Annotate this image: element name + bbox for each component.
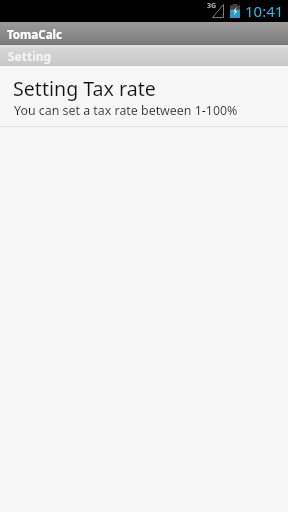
button[interactable]: Setting Tax rate xyxy=(0,69,288,126)
staticText: Setting xyxy=(8,48,52,64)
staticText: 10:41 xyxy=(245,1,284,21)
button[interactable]: TomaCalc xyxy=(0,22,288,45)
other: Battery charging xyxy=(230,4,240,18)
staticText: You can set a tax rate between 1-100% xyxy=(14,102,238,119)
staticText: TomaCalc xyxy=(7,25,62,43)
button[interactable]: Setting xyxy=(0,45,288,69)
staticText: Setting Tax rate xyxy=(13,75,156,102)
other: Mobile signal xyxy=(212,4,224,18)
staticText: 3G xyxy=(207,1,217,11)
